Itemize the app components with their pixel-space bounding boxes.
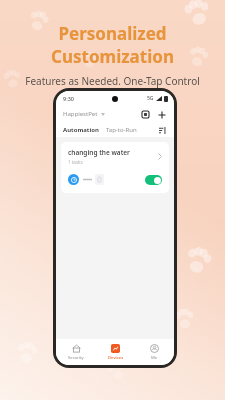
button[interactable]: Tap-to-Run <box>106 126 137 134</box>
staticText: Tap-to-Run <box>106 126 137 134</box>
button[interactable]: HappiestPet <box>63 110 105 118</box>
staticText: Automation <box>63 126 99 134</box>
button[interactable]: Sort <box>157 125 167 135</box>
button[interactable]: Schedule <box>68 174 79 185</box>
button[interactable]: Enable automation <box>145 175 162 185</box>
button[interactable]: Scan <box>140 109 151 120</box>
staticText: HappiestPet <box>63 110 98 118</box>
button[interactable]: Automation <box>63 126 99 134</box>
staticText: Security <box>68 355 84 361</box>
button[interactable]: changing the water <box>61 142 169 171</box>
button[interactable]: Devices <box>96 339 135 365</box>
staticText: Me <box>151 355 158 361</box>
staticText: 9:30 <box>63 95 74 102</box>
staticText: Personalized Customization <box>0 22 225 68</box>
staticText: Features as Needed. One-Tap Control <box>25 74 200 88</box>
staticText: 5G <box>147 95 154 102</box>
staticText: Devices <box>108 355 124 361</box>
staticText: 1 tasks <box>68 159 83 165</box>
button[interactable]: Add <box>156 109 167 120</box>
button[interactable]: Me <box>135 339 174 365</box>
staticText: changing the water <box>68 148 130 157</box>
button[interactable]: Device <box>95 174 104 185</box>
button[interactable]: Security <box>56 339 96 365</box>
